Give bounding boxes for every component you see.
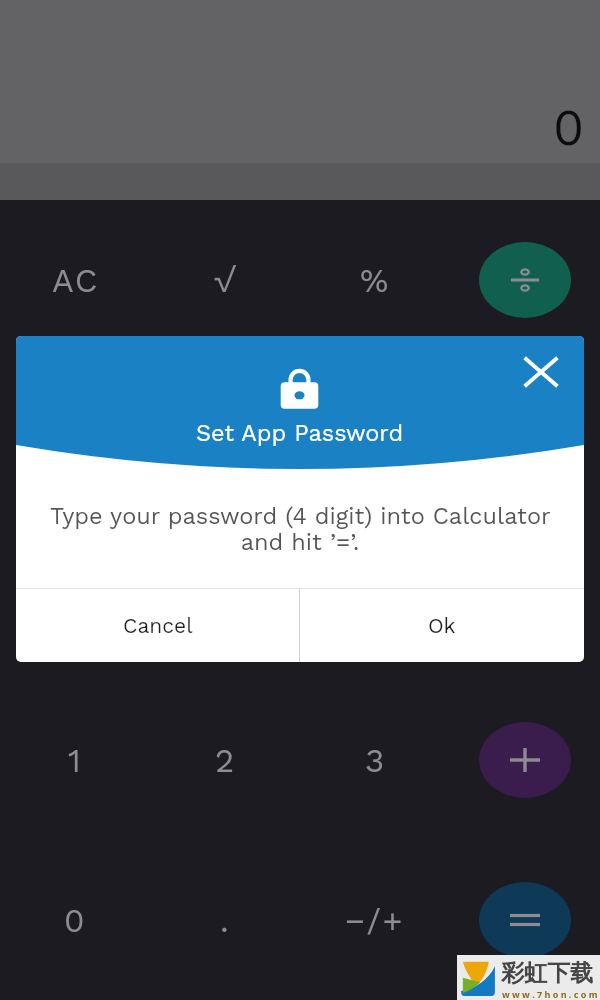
button[interactable]: 0 [0, 840, 150, 1000]
staticText: Ok [428, 613, 456, 638]
staticText: 3 [365, 741, 386, 780]
staticText: w w w . 7 h o n . c o m [502, 988, 598, 1000]
staticText: . [220, 901, 231, 940]
button[interactable]: Plus [479, 722, 571, 798]
staticText: 2 [215, 741, 236, 780]
button[interactable]: 8 [150, 360, 300, 520]
button[interactable]: 5 [150, 520, 300, 680]
staticText: % [360, 261, 390, 300]
staticText: 5 [215, 581, 236, 620]
staticText: Cancel [123, 613, 193, 638]
staticText: 6 [364, 581, 386, 620]
button[interactable]: 4 [0, 520, 150, 680]
staticText: √ [214, 261, 237, 300]
button[interactable]: Cancel [16, 589, 299, 662]
other: Lock [280, 362, 324, 406]
staticText: Type your password (4 digit) into Calcul… [44, 502, 556, 556]
button[interactable]: Ok [300, 589, 584, 662]
button[interactable]: Multiply [479, 402, 571, 478]
staticText: 0 [64, 901, 87, 940]
button[interactable]: 6 [300, 520, 450, 680]
staticText: 7 [65, 421, 86, 460]
button[interactable]: Equals [479, 882, 571, 958]
button[interactable]: 1 [0, 680, 150, 840]
button[interactable]: √ [150, 200, 300, 360]
staticText: 4 [64, 581, 86, 620]
button[interactable]: 3 [300, 680, 450, 840]
button[interactable]: 7 [0, 360, 150, 520]
button[interactable]: Divide [479, 242, 571, 318]
staticText: AC [52, 261, 99, 300]
button[interactable]: Minus [479, 562, 571, 638]
staticText: 1 [68, 741, 83, 780]
staticText: 彩虹下载 [501, 959, 593, 988]
staticText: Set App Password [196, 419, 404, 447]
button[interactable]: −/+ [300, 840, 450, 1000]
staticText: 9 [364, 421, 386, 460]
staticText: 8 [214, 421, 236, 460]
staticText: −/+ [345, 901, 405, 940]
staticText: 0 [553, 98, 585, 157]
button[interactable]: 2 [150, 680, 300, 840]
button[interactable]: AC [0, 200, 150, 360]
button[interactable]: % [300, 200, 450, 360]
button[interactable]: Close [521, 352, 561, 392]
button[interactable]: 9 [300, 360, 450, 520]
